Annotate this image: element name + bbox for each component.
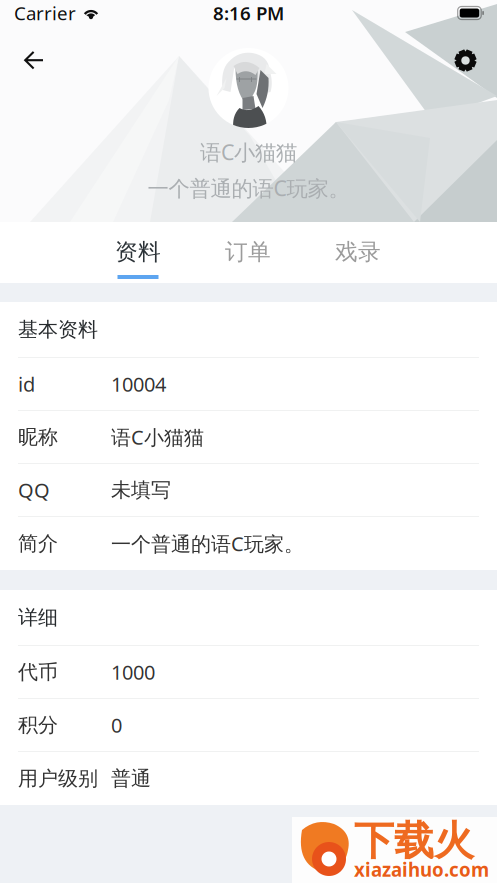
staticText: 8:16 PM xyxy=(213,1,284,25)
staticText: 戏录 xyxy=(335,238,381,266)
staticText: 昵称 xyxy=(18,425,58,449)
staticText: 代币 xyxy=(18,660,58,684)
staticText: 一个普通的语C玩家。 xyxy=(147,174,349,202)
staticText: id xyxy=(18,371,35,397)
button[interactable]: 资料 xyxy=(83,222,193,283)
staticText: 0 xyxy=(111,712,122,738)
staticText: 详细 xyxy=(18,605,58,630)
staticText: 积分 xyxy=(18,713,58,737)
staticText: 一个普通的语C玩家。 xyxy=(111,530,304,557)
button[interactable]: 订单 xyxy=(193,222,303,283)
staticText: 未填写 xyxy=(111,478,171,502)
staticText: xiazaihuo.com xyxy=(354,857,489,882)
staticText: 资料 xyxy=(115,238,161,266)
button[interactable]: Back xyxy=(12,37,56,84)
staticText: 订单 xyxy=(225,238,271,266)
staticText: 语C小猫猫 xyxy=(200,138,297,166)
staticText: 1000 xyxy=(111,659,155,685)
button[interactable]: Settings xyxy=(443,37,488,84)
staticText: 用户级别 xyxy=(18,766,98,791)
staticText: 普通 xyxy=(111,766,151,791)
button[interactable]: 戏录 xyxy=(303,222,413,283)
staticText: Carrier xyxy=(14,1,76,25)
staticText: 简介 xyxy=(18,531,58,556)
staticText: 语C小猫猫 xyxy=(111,424,204,450)
staticText: 下载火 xyxy=(354,816,474,865)
staticText: 10004 xyxy=(111,371,166,397)
staticText: QQ xyxy=(18,477,50,503)
staticText: 基本资料 xyxy=(18,317,98,342)
